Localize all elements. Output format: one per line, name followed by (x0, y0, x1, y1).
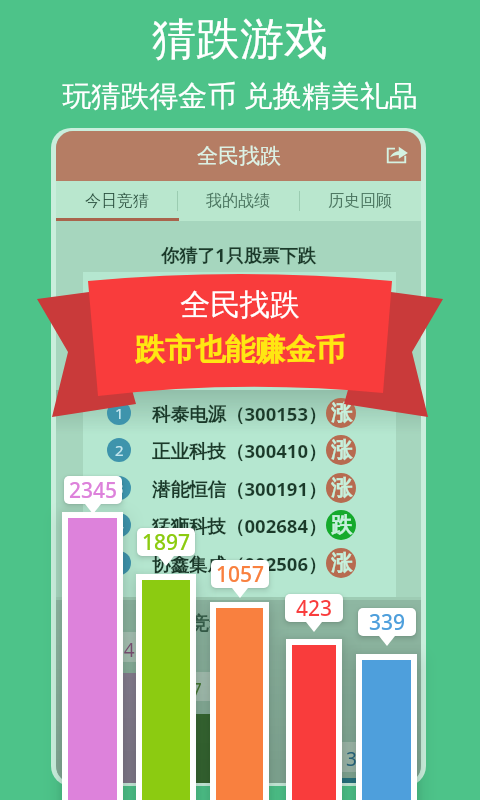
staticText: 1897 (142, 528, 191, 556)
staticText: 竞猜统计 (190, 612, 266, 636)
staticText: 涨 (331, 550, 352, 576)
staticText: 历史回顾 (328, 191, 392, 211)
staticText: 涨 (331, 475, 352, 501)
staticText: 7 (191, 677, 202, 703)
staticText: 2345 (69, 476, 118, 504)
button[interactable]: 我的战绩 (177, 181, 299, 221)
staticText: 你猜了1只股票下跌 (56, 243, 421, 268)
staticText: 猛狮科技（002684） (152, 513, 327, 538)
staticText: 跌 (331, 512, 352, 538)
staticText: 3 (115, 478, 124, 498)
button[interactable]: 历史回顾 (299, 181, 421, 221)
staticText: 玩猜跌得金币 兑换精美礼品 (62, 75, 418, 115)
staticText: 今日竞猜 (85, 191, 149, 211)
staticText: 345 (113, 637, 146, 663)
staticText: 2 (115, 440, 124, 460)
button[interactable]: 今日竞猜 (56, 181, 177, 221)
staticText: 科泰电源（300153） (152, 401, 327, 426)
staticText: 339 (369, 608, 406, 636)
staticText: 涨 (331, 437, 352, 463)
staticText: 我的战绩 (206, 191, 270, 211)
button[interactable]: 5 (100, 545, 356, 581)
staticText: 正业科技（300410） (152, 438, 327, 463)
staticText: 4 (115, 515, 124, 535)
button[interactable]: 3 (100, 470, 356, 506)
staticText: 协鑫集成（002506） (152, 551, 327, 576)
staticText: 全民找跌 (197, 143, 281, 169)
staticText: 33 (346, 746, 368, 772)
staticText: 5 (115, 553, 124, 573)
staticText: 1057 (216, 560, 265, 588)
staticText: 跌市也能赚金币 (135, 331, 345, 369)
staticText: 423 (296, 594, 333, 622)
staticText: 1 (115, 403, 124, 423)
staticText: 涨 (331, 400, 352, 426)
button[interactable]: 1 (100, 395, 356, 431)
staticText: 猜跌游戏 (152, 12, 328, 67)
staticText: 全民找跌 (180, 286, 300, 324)
staticText: 潜能恒信（300191） (152, 476, 327, 501)
button[interactable]: 2 (100, 432, 356, 468)
button[interactable]: 4 (100, 507, 356, 543)
button[interactable]: Share (382, 142, 410, 170)
